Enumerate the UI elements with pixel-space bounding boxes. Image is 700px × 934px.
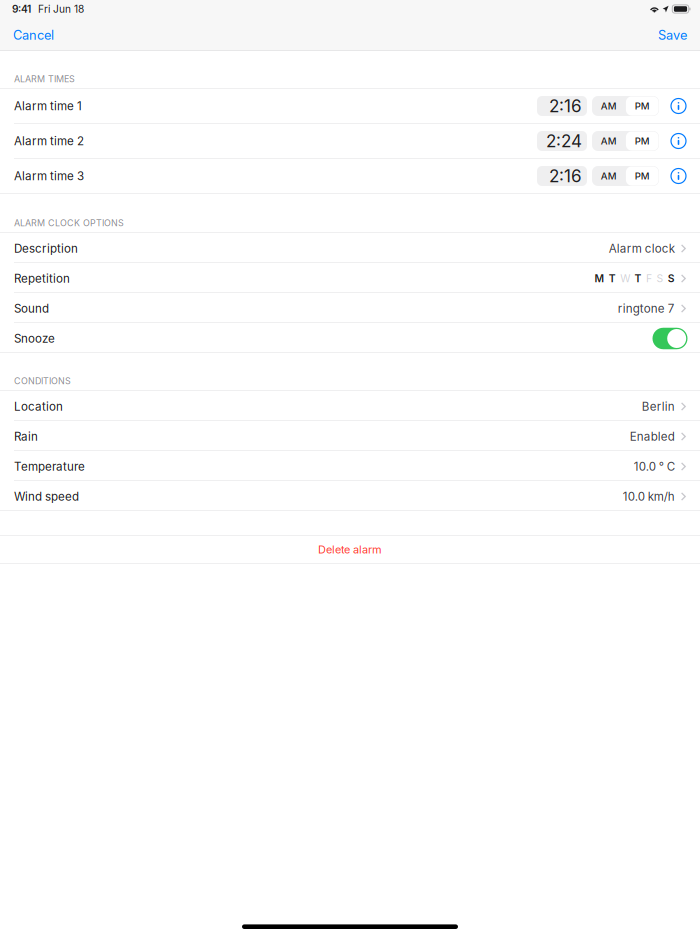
- staticText: Alarm clock: [609, 241, 675, 255]
- button[interactable]: 2:16: [537, 166, 587, 186]
- staticText: 2:16: [549, 166, 582, 186]
- staticText: Rain: [14, 429, 38, 443]
- staticText: Location: [14, 399, 63, 413]
- staticText: Snooze: [14, 331, 55, 345]
- button[interactable]: More info about Alarm time 1: [659, 98, 686, 113]
- button[interactable]: PM: [625, 131, 659, 151]
- button[interactable]: Sound: [0, 293, 700, 323]
- button[interactable]: AM: [592, 131, 625, 151]
- staticText: PM: [635, 170, 650, 182]
- button[interactable]: Save: [645, 20, 700, 50]
- staticText: Alarm time 1: [14, 99, 82, 113]
- staticText: Wind speed: [14, 489, 79, 503]
- button[interactable]: More info about Alarm time 3: [659, 168, 686, 183]
- button[interactable]: Snooze: [0, 323, 700, 353]
- button[interactable]: Location: [0, 391, 700, 421]
- staticText: Description: [14, 241, 78, 255]
- button[interactable]: PM: [625, 96, 659, 116]
- staticText: AM: [601, 100, 617, 112]
- button[interactable]: Cancel: [0, 20, 67, 50]
- staticText: F: [646, 272, 652, 285]
- button[interactable]: 2:16: [537, 96, 587, 116]
- button[interactable]: Delete alarm: [0, 536, 700, 564]
- staticText: Delete alarm: [318, 543, 382, 556]
- staticText: ALARM CLOCK OPTIONS: [14, 218, 124, 228]
- button[interactable]: More info about Alarm time 2: [659, 133, 686, 148]
- staticText: M: [594, 272, 604, 285]
- button[interactable]: Wind speed: [0, 481, 700, 511]
- staticText: 10.0 ° C: [634, 459, 675, 473]
- staticText: CONDITIONS: [14, 376, 71, 386]
- staticText: Fri Jun 18: [38, 3, 84, 15]
- staticText: S: [656, 272, 663, 285]
- button[interactable]: AM: [592, 96, 625, 116]
- staticText: 10.0 km/h: [623, 489, 675, 503]
- button[interactable]: PM: [625, 166, 659, 186]
- staticText: S: [668, 272, 675, 285]
- button[interactable]: Repetition: [0, 263, 700, 293]
- staticText: T: [635, 272, 642, 285]
- staticText: AM: [601, 170, 617, 182]
- staticText: ringtone 7: [618, 301, 675, 315]
- button[interactable]: AM: [592, 166, 625, 186]
- staticText: PM: [635, 135, 650, 147]
- staticText: AM: [601, 135, 617, 147]
- button[interactable]: 2:24: [537, 131, 587, 151]
- staticText: Alarm time 3: [14, 169, 84, 183]
- staticText: ALARM TIMES: [14, 74, 75, 84]
- staticText: 2:16: [549, 96, 582, 116]
- staticText: Enabled: [630, 429, 675, 443]
- staticText: Repetition: [14, 271, 70, 285]
- staticText: 2:24: [546, 131, 582, 151]
- staticText: Cancel: [13, 27, 54, 43]
- staticText: Save: [658, 27, 687, 43]
- staticText: Temperature: [14, 459, 85, 473]
- button[interactable]: Rain: [0, 421, 700, 451]
- staticText: W: [620, 272, 630, 285]
- staticText: Sound: [14, 301, 49, 315]
- button[interactable]: Description: [0, 233, 700, 263]
- staticText: 9:41: [12, 3, 31, 15]
- staticText: Berlin: [642, 399, 675, 413]
- button[interactable]: Temperature: [0, 451, 700, 481]
- staticText: T: [609, 272, 616, 285]
- staticText: Alarm time 2: [14, 134, 84, 148]
- staticText: PM: [635, 100, 650, 112]
